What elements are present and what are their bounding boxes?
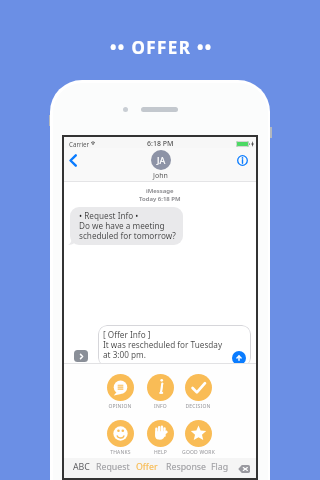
staticText: Today 6:18 PM bbox=[139, 195, 181, 203]
button[interactable]: HELP bbox=[133, 420, 187, 456]
button[interactable]: More apps bbox=[74, 350, 88, 362]
button[interactable]: DECISION bbox=[171, 374, 225, 410]
staticText: Offer bbox=[136, 461, 158, 473]
staticText: [ Offer Info ] It was rescheduled for Tu… bbox=[103, 329, 223, 360]
button[interactable]: Offer bbox=[136, 461, 158, 473]
button[interactable]: OPINION bbox=[93, 374, 147, 410]
staticText: GOOD WORK bbox=[182, 449, 215, 456]
button[interactable]: Info bbox=[237, 155, 248, 166]
staticText: DECISION bbox=[185, 403, 211, 410]
button[interactable]: Response bbox=[166, 461, 206, 473]
button[interactable]: THANKS bbox=[93, 420, 147, 456]
button[interactable]: INFO bbox=[133, 374, 187, 410]
staticText: 6:18 PM bbox=[147, 139, 174, 149]
staticText: • Request Info • Do we have a meeting sc… bbox=[79, 210, 176, 241]
staticText: •• OFFER •• bbox=[110, 36, 213, 59]
staticText: THANKS bbox=[110, 449, 131, 456]
staticText: John bbox=[153, 171, 168, 181]
staticText: INFO bbox=[154, 403, 167, 410]
staticText: HELP bbox=[154, 449, 167, 456]
staticText: Carrier bbox=[69, 140, 90, 148]
button[interactable]: Request bbox=[96, 461, 130, 473]
staticText: iMessage bbox=[146, 187, 174, 195]
button[interactable]: ABC bbox=[73, 461, 90, 473]
staticText: Flag bbox=[211, 461, 229, 473]
staticText: JA bbox=[157, 154, 166, 166]
staticText: Response bbox=[166, 461, 206, 473]
button[interactable]: Back bbox=[68, 154, 78, 167]
button[interactable]: GOOD WORK bbox=[171, 420, 225, 456]
button[interactable]: Send bbox=[232, 351, 246, 365]
button[interactable]: Delete bbox=[238, 465, 250, 473]
staticText: ABC bbox=[73, 461, 90, 473]
staticText: OPINION bbox=[108, 403, 132, 410]
button[interactable]: Contact John bbox=[151, 150, 171, 170]
staticText: Request bbox=[96, 461, 130, 473]
button[interactable]: Flag bbox=[211, 461, 229, 473]
